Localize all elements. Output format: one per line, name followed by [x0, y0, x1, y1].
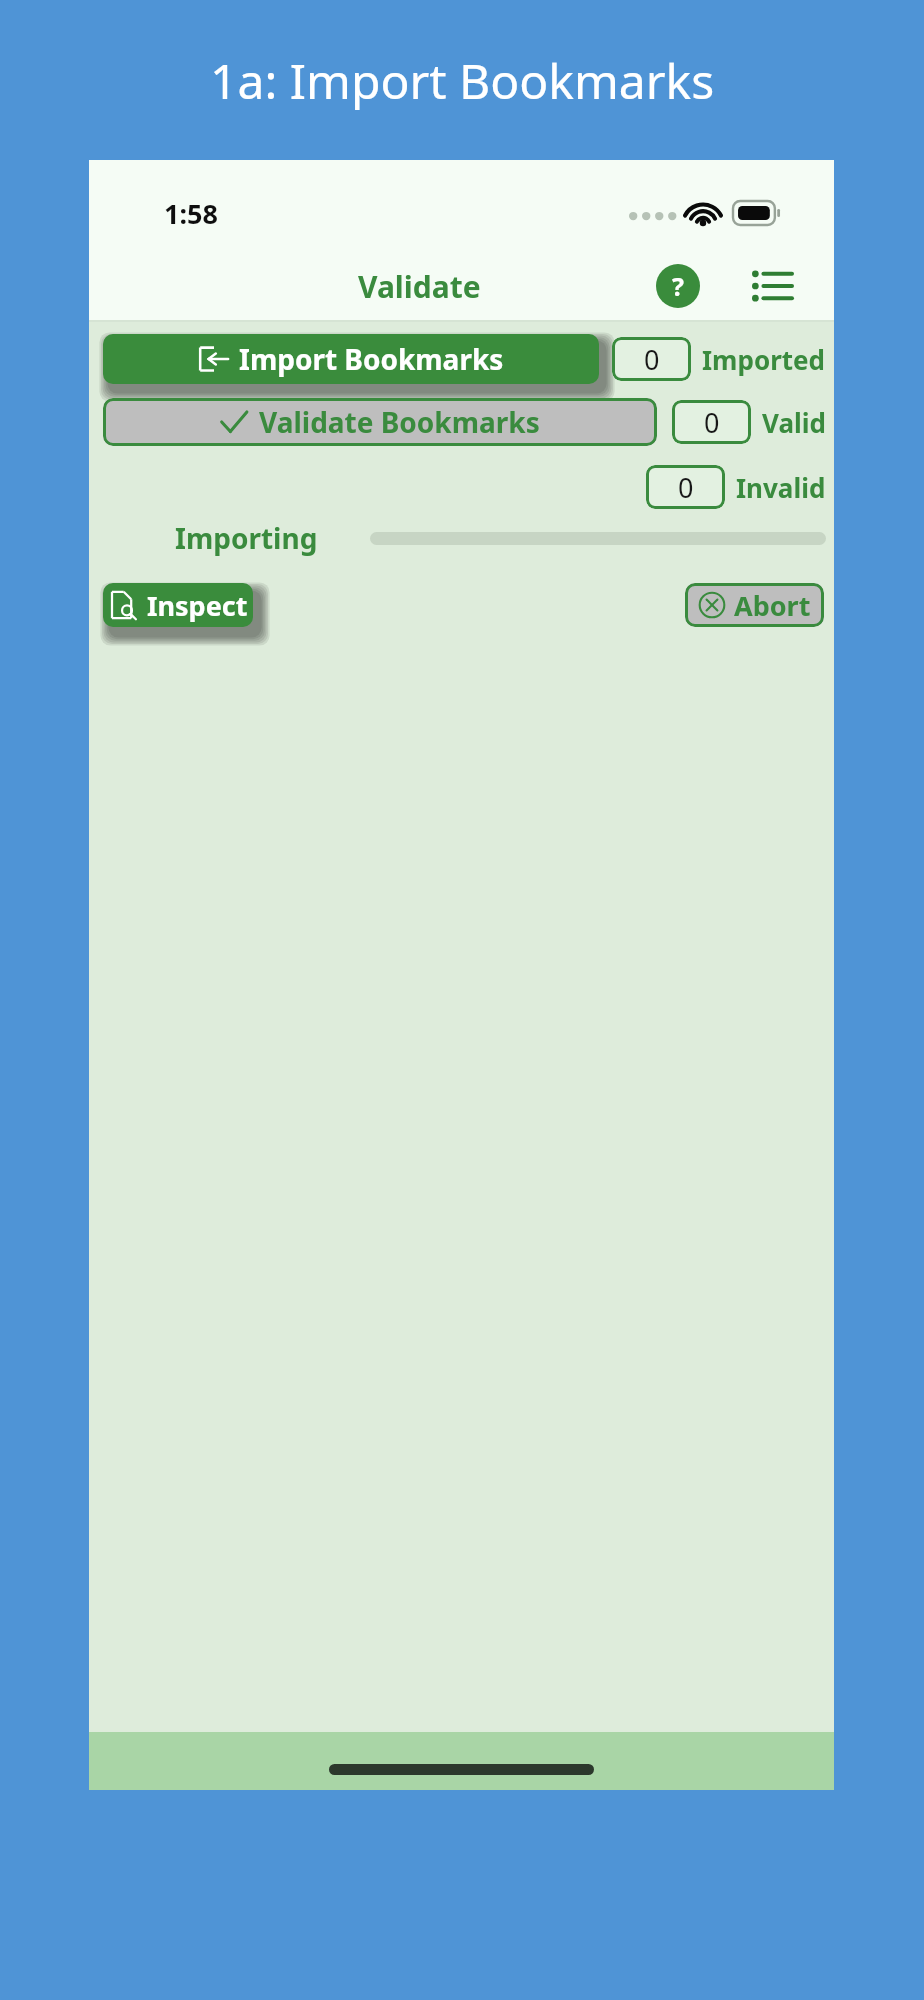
- staticText: 0: [644, 341, 660, 378]
- staticText: 1a: Import Bookmarks: [210, 48, 715, 113]
- staticText: Abort: [734, 587, 811, 624]
- button[interactable]: 0: [646, 465, 725, 509]
- staticText: Validate Bookmarks: [259, 403, 540, 441]
- button[interactable]: Help: [656, 264, 700, 308]
- staticText: Imported: [702, 342, 826, 377]
- button[interactable]: 0: [612, 337, 691, 381]
- staticText: Import Bookmarks: [239, 340, 504, 378]
- button[interactable]: 0: [672, 400, 751, 444]
- staticText: ?: [672, 269, 684, 303]
- button[interactable]: Inspect: [103, 583, 253, 627]
- staticText: Invalid: [736, 470, 826, 505]
- staticText: 0: [704, 404, 720, 441]
- button[interactable]: Validate Bookmarks: [103, 398, 657, 446]
- staticText: Inspect: [147, 587, 248, 624]
- staticText: Valid: [762, 405, 826, 440]
- staticText: Importing: [175, 519, 318, 557]
- button[interactable]: Menu: [748, 262, 796, 310]
- staticText: Validate: [358, 266, 481, 307]
- button[interactable]: Abort: [685, 583, 824, 627]
- button[interactable]: Import Bookmarks: [103, 334, 599, 384]
- staticText: 1:58: [164, 195, 218, 232]
- staticText: 0: [678, 469, 694, 506]
